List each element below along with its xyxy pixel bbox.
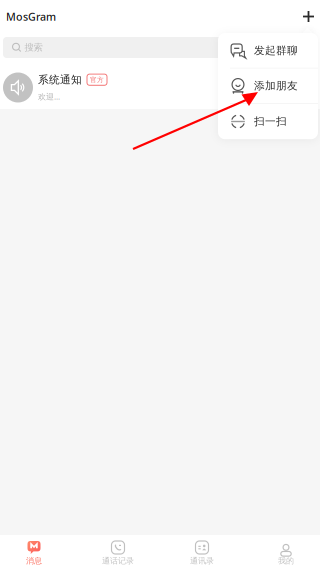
staticText: 欢迎... bbox=[38, 91, 60, 102]
staticText: 发起群聊 bbox=[254, 44, 298, 57]
staticText: 我的 bbox=[278, 556, 294, 566]
staticText: 搜索 bbox=[24, 42, 42, 53]
button[interactable]: 通话记录 bbox=[76, 535, 160, 569]
staticText: 扫一扫 bbox=[254, 115, 287, 128]
button[interactable]: 添加朋友 bbox=[218, 68, 318, 104]
button[interactable]: Add bbox=[297, 5, 320, 28]
button[interactable]: 消息 bbox=[0, 535, 76, 569]
button[interactable]: 发起群聊 bbox=[218, 33, 318, 68]
staticText: 通话记录 bbox=[102, 556, 134, 566]
button[interactable]: 系统通知 bbox=[0, 58, 320, 109]
button[interactable]: 扫一扫 bbox=[218, 104, 318, 139]
button[interactable]: 我的 bbox=[244, 535, 320, 569]
staticText: 消息 bbox=[26, 556, 42, 566]
staticText: 系统通知 bbox=[38, 73, 82, 86]
button[interactable]: 通讯录 bbox=[160, 535, 244, 569]
staticText: MosGram bbox=[6, 9, 56, 24]
staticText: 官方 bbox=[90, 76, 104, 84]
staticText: 添加朋友 bbox=[254, 79, 298, 92]
staticText: 通讯录 bbox=[190, 556, 214, 566]
